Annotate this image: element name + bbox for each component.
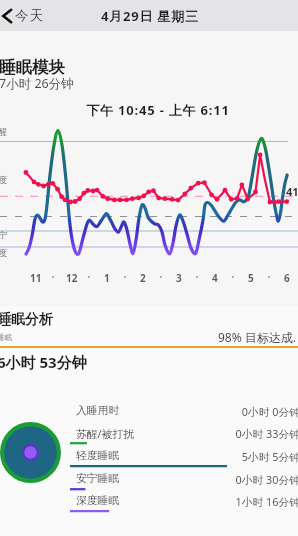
- staticText: 5: [248, 271, 254, 285]
- staticText: 睡眠分析: [0, 311, 53, 329]
- staticText: 3: [176, 271, 182, 285]
- staticText: 深度: [0, 248, 7, 259]
- staticText: 1小时 16分钟: [72, 494, 298, 509]
- staticText: 轻度: [0, 175, 7, 186]
- staticText: 1: [104, 271, 110, 285]
- staticText: 11: [30, 271, 42, 285]
- staticText: 0小时 0分钟: [72, 404, 298, 419]
- staticText: 6小时 53分钟: [0, 352, 87, 372]
- staticText: 睡眠模块: [0, 57, 65, 78]
- button[interactable]: 安宁睡眠: [70, 472, 298, 494]
- staticText: 7小时 26分钟: [0, 75, 74, 92]
- button[interactable]: 苏醒/被打扰: [70, 426, 298, 448]
- staticText: 6: [284, 271, 290, 285]
- staticText: 下午 10:45 - 上午 6:11: [9, 101, 298, 119]
- staticText: 入睡用时: [76, 404, 120, 418]
- staticText: 睡眠: [0, 333, 12, 342]
- staticText: 安宁: [0, 230, 7, 241]
- staticText: 4月29日 星期三: [101, 7, 199, 25]
- staticText: 轻度睡眠: [76, 449, 120, 463]
- staticText: 0小时 33分钟: [72, 426, 298, 441]
- staticText: 0小时 30分钟: [72, 472, 298, 487]
- staticText: 98% 目标达成.: [0, 329, 296, 345]
- button[interactable]: 深度睡眠: [70, 494, 298, 516]
- button[interactable]: 今天: [1, 0, 44, 31]
- staticText: 2: [140, 271, 146, 285]
- staticText: 安宁睡眠: [76, 472, 120, 486]
- staticText: 12: [66, 271, 78, 285]
- staticText: 清醒: [0, 127, 7, 138]
- staticText: 41%: [286, 184, 298, 199]
- button[interactable]: 轻度睡眠: [70, 449, 298, 471]
- staticText: 4: [212, 271, 218, 285]
- staticText: 苏醒/被打扰: [76, 426, 135, 441]
- staticText: 5小时 5分钟: [72, 449, 298, 464]
- staticText: 深度睡眠: [76, 494, 120, 508]
- button[interactable]: 入睡用时: [70, 404, 298, 426]
- staticText: 今天: [15, 7, 45, 24]
